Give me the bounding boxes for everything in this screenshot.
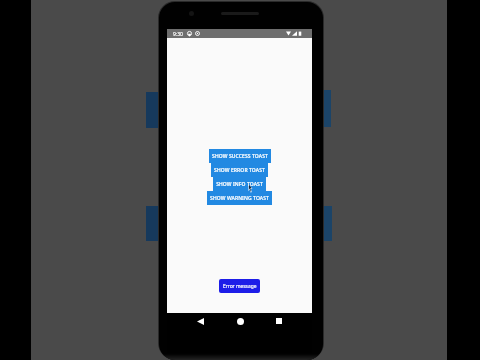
staticText: Error message xyxy=(223,283,257,290)
staticText: SHOW INFO TOAST xyxy=(216,181,263,188)
button[interactable]: Home xyxy=(232,313,248,329)
staticText: SHOW WARNING TOAST xyxy=(210,195,269,202)
button[interactable]: SHOW WARNING TOAST xyxy=(207,191,272,205)
button[interactable]: Back xyxy=(192,313,208,329)
button[interactable]: SHOW INFO TOAST xyxy=(213,177,266,191)
button[interactable]: SHOW SUCCESS TOAST xyxy=(209,149,271,163)
button[interactable]: SHOW ERROR TOAST xyxy=(211,163,268,177)
staticText: 9:30 xyxy=(173,31,183,38)
staticText: SHOW ERROR TOAST xyxy=(214,167,265,174)
button[interactable]: Recent apps xyxy=(271,313,287,329)
button[interactable]: Error message xyxy=(219,279,260,293)
staticText: SHOW SUCCESS TOAST xyxy=(212,153,268,160)
